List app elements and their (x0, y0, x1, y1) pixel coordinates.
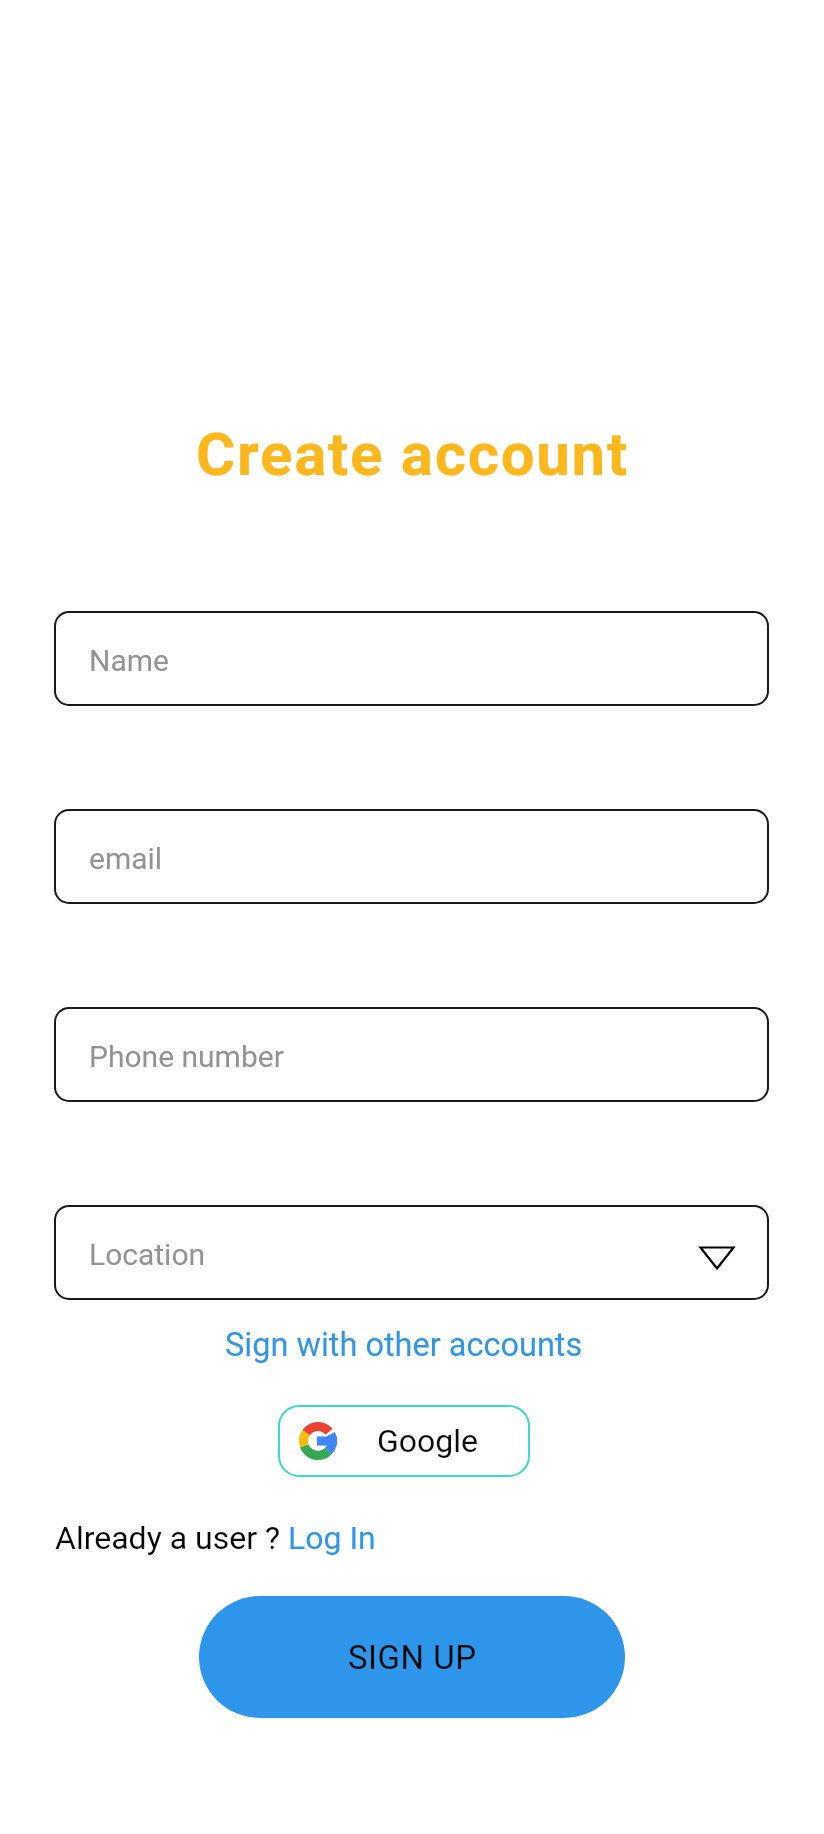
button[interactable]: Phone number (54, 1007, 769, 1102)
button[interactable]: Already a user ? Log In (55, 1519, 376, 1557)
button[interactable]: Google (278, 1405, 530, 1477)
staticText: email (89, 841, 163, 876)
button[interactable]: Name (54, 611, 769, 706)
button[interactable]: Location (54, 1205, 769, 1300)
staticText: Location (89, 1237, 206, 1272)
staticText: SIGN UP (348, 1638, 477, 1677)
button[interactable]: Sign with other accounts (225, 1326, 583, 1364)
staticText: Phone number (89, 1039, 284, 1074)
button[interactable]: email (54, 809, 769, 904)
staticText: Name (89, 643, 169, 678)
button[interactable]: SIGN UP (199, 1596, 625, 1718)
staticText: Create account (196, 419, 629, 489)
staticText: Google (377, 1422, 479, 1460)
